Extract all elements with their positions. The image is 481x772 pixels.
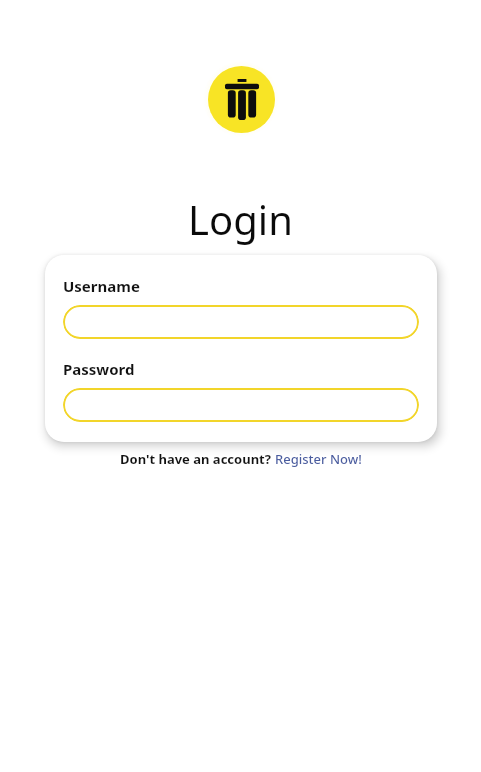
button[interactable]: Username input field [63,305,419,339]
staticText: Don't have an account? [120,450,275,468]
staticText: Register Now! [275,450,362,468]
button[interactable]: Don't have an account? [0,450,481,468]
staticText: Login [188,192,293,246]
staticText: Password [63,359,135,379]
button[interactable]: Password input field [63,388,419,422]
button[interactable]: App logo, trash bin [208,66,275,133]
staticText: Username [63,276,140,296]
